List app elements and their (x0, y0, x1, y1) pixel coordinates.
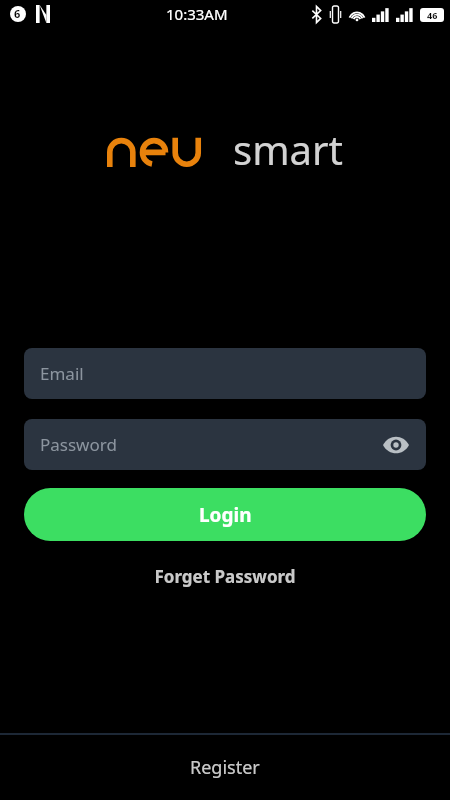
button[interactable]: Login (24, 488, 426, 541)
button[interactable]: Email (24, 348, 426, 399)
staticText: 46 (427, 9, 438, 21)
button[interactable]: Show password (376, 425, 416, 465)
staticText: Login (199, 502, 252, 528)
button[interactable]: Register (0, 735, 450, 800)
button[interactable]: Password (24, 419, 426, 470)
staticText: 10:33AM (166, 4, 228, 24)
button[interactable]: Forget Password (24, 559, 426, 594)
staticText: Forget Password (154, 565, 296, 588)
staticText: Register (190, 755, 260, 780)
staticText: Email (40, 362, 84, 385)
staticText: smart (233, 122, 343, 176)
staticText: Password (40, 433, 117, 456)
staticText: 6 (14, 6, 21, 21)
